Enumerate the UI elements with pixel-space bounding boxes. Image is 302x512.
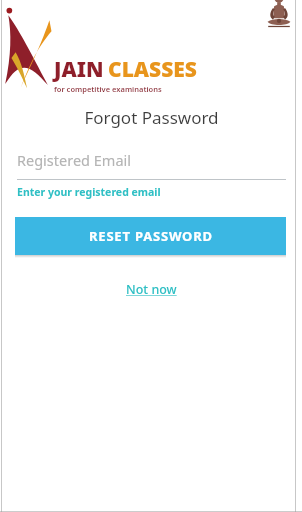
staticText: JAIN xyxy=(54,55,104,84)
staticText: Registered Email xyxy=(17,150,132,170)
button[interactable]: RESET PASSWORD xyxy=(15,217,286,255)
button[interactable]: Not now xyxy=(116,278,187,301)
staticText: RESET PASSWORD xyxy=(89,227,213,245)
staticText: Enter your registered email xyxy=(17,185,161,199)
staticText: Not now xyxy=(126,281,177,298)
staticText: for competitive examinations xyxy=(54,84,162,94)
staticText: Forgot Password xyxy=(84,106,219,129)
staticText: CLASSES xyxy=(108,55,197,84)
